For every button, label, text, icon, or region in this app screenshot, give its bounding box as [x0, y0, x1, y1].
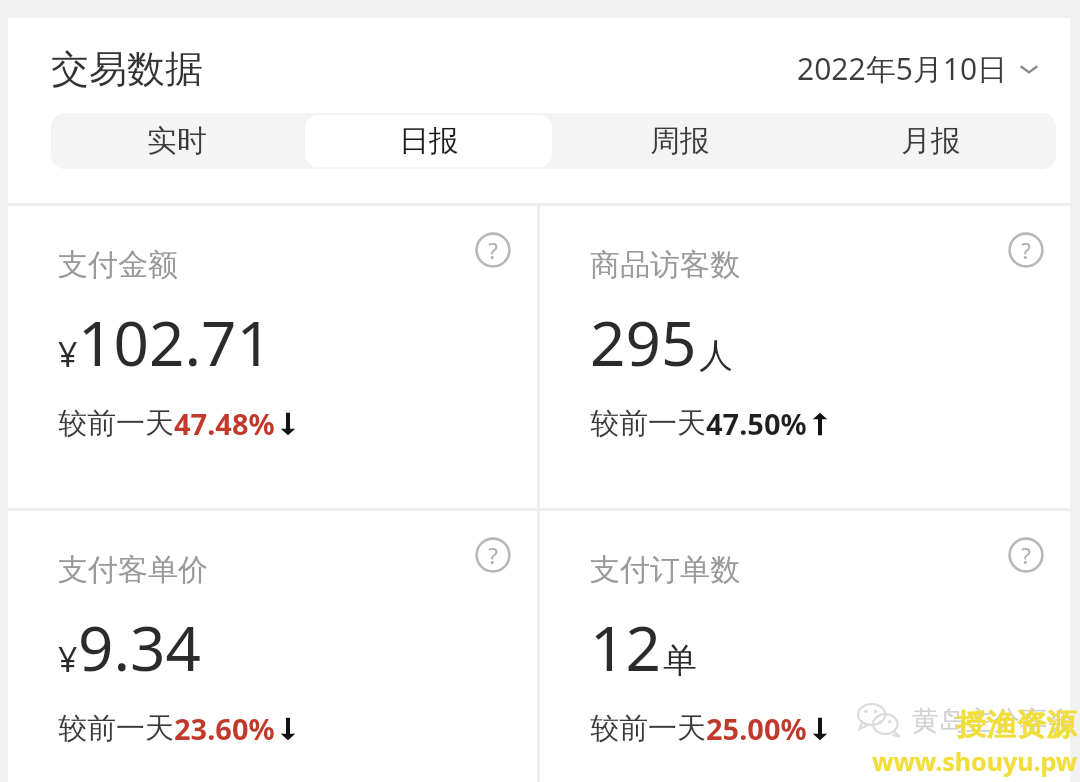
staticText: 支付订单数	[590, 551, 740, 589]
button[interactable]: 支付订单数	[540, 511, 1070, 782]
staticText: 日报	[399, 122, 459, 160]
staticText: 较前一天	[58, 405, 174, 442]
staticText: ?	[1021, 235, 1031, 265]
staticText: 实时	[147, 122, 207, 160]
staticText: 月报	[901, 122, 961, 160]
staticText: 单	[663, 639, 697, 682]
staticText: ¥	[58, 636, 78, 682]
staticText: 支付金额	[58, 246, 178, 284]
button[interactable]: 支付客单价	[8, 511, 537, 782]
staticText: 295	[590, 300, 697, 384]
staticText: ?	[488, 540, 498, 570]
button[interactable]: 商品访客数	[540, 206, 1070, 508]
staticText: 人	[699, 334, 733, 377]
staticText: 交易数据	[51, 45, 203, 93]
staticText: 授渔资源	[956, 706, 1076, 744]
staticText: 47.50%	[706, 404, 807, 443]
staticText: 周报	[650, 122, 710, 160]
staticText: ¥	[58, 331, 78, 377]
staticText: ?	[1021, 540, 1031, 570]
staticText: 较前一天	[58, 710, 174, 747]
button[interactable]: 实时	[51, 113, 303, 169]
staticText: 102.71	[78, 300, 272, 384]
staticText: 支付客单价	[58, 551, 208, 589]
button[interactable]: 日报	[305, 115, 552, 167]
staticText: 较前一天	[590, 405, 706, 442]
staticText: 23.60%	[174, 709, 275, 748]
button[interactable]: 商品访客数 说明	[1004, 228, 1048, 272]
button[interactable]: 支付订单数 说明	[1004, 533, 1048, 577]
staticText: ?	[488, 235, 498, 265]
button[interactable]: 支付金额 说明	[471, 228, 515, 272]
staticText: 较前一天	[590, 710, 706, 747]
button[interactable]: 周报	[554, 113, 805, 169]
button[interactable]: 月报	[805, 113, 1056, 169]
staticText: 商品访客数	[590, 246, 740, 284]
staticText: 黄岛主分享会	[912, 704, 1074, 738]
staticText: 12	[590, 605, 661, 689]
staticText: 25.00%	[706, 709, 807, 748]
staticText: 9.34	[78, 605, 202, 689]
staticText: www.shouyu.pw	[872, 744, 1078, 778]
button[interactable]: 支付金额	[8, 206, 537, 508]
staticText: 2022年5月10日	[797, 48, 1008, 89]
button[interactable]: 支付客单价 说明	[471, 533, 515, 577]
staticText: 47.48%	[174, 404, 275, 443]
button[interactable]: 2022年5月10日	[793, 44, 1044, 93]
